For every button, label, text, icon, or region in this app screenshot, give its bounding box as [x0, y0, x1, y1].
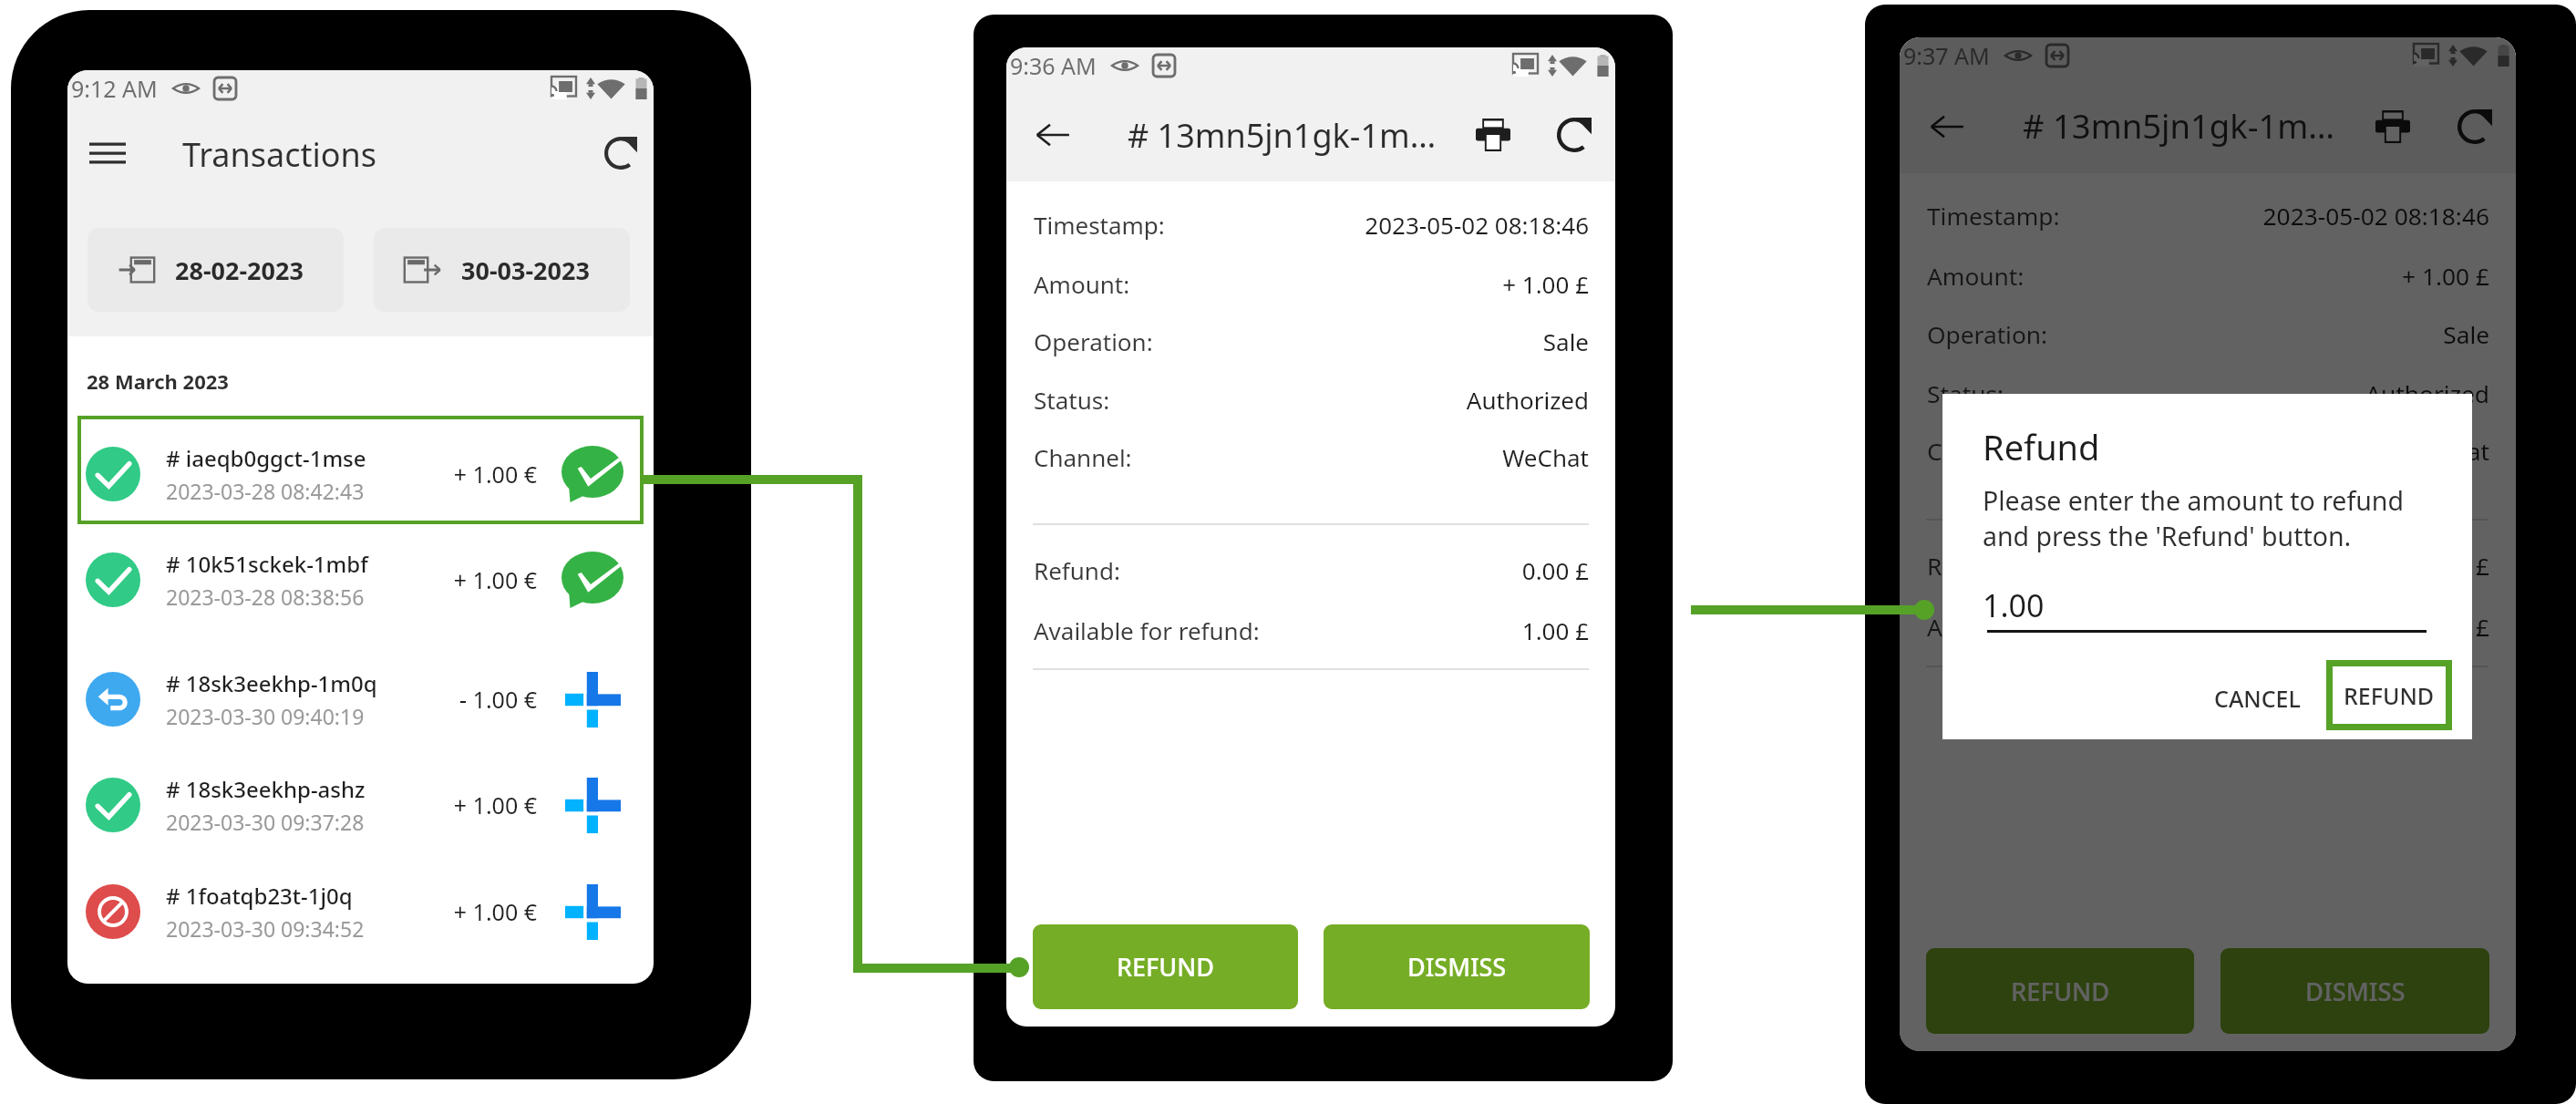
staticText: Operation: [1034, 325, 1153, 357]
staticText: 0.00 £ [2421, 550, 2489, 583]
staticText: 1.00 £ [1521, 614, 1589, 646]
button[interactable]: # 18sk3eekhp-1m0q [67, 652, 654, 747]
staticText: DISMISS [2305, 975, 2406, 1008]
staticText: DISMISS [1407, 950, 1507, 984]
staticText: 9:36 AM [1010, 50, 1097, 81]
staticText: 30-03-2023 [461, 253, 590, 287]
staticText: WeChat [2402, 435, 2489, 468]
staticText: + 1.00 € [453, 896, 537, 927]
staticText: # 18sk3eekhp-ashz [166, 774, 366, 804]
button[interactable]: Print [2372, 106, 2413, 147]
staticText: # 18sk3eekhp-1m0q [166, 668, 377, 698]
staticText: Status: [1927, 377, 2004, 410]
staticText: Refund: [1034, 554, 1120, 586]
button[interactable]: DISMISS [2221, 948, 2489, 1034]
staticText: + 1.00 € [453, 459, 537, 490]
staticText: REFUND [2011, 975, 2110, 1008]
staticText: Please enter the amount to refund and pr… [1983, 483, 2404, 553]
staticText: 2023-03-28 08:38:56 [166, 583, 365, 611]
button[interactable]: REFUND [2326, 660, 2452, 730]
button[interactable]: # iaeqb0ggct-1mse [67, 427, 654, 521]
staticText: Authorized [2365, 377, 2489, 410]
staticText: 28-02-2023 [175, 253, 304, 287]
staticText: 1.00 £ [2421, 611, 2489, 644]
staticText: Amount: [1034, 268, 1130, 300]
button[interactable]: Refresh [603, 135, 639, 171]
button[interactable]: Back [1033, 115, 1073, 155]
button[interactable]: CANCEL [2199, 669, 2316, 727]
staticText: CANCEL [2214, 683, 2301, 714]
staticText: # 13mn5jn1gk-1m… [2023, 103, 2335, 149]
staticText: Amount: [1927, 260, 2025, 293]
staticText: 2023-03-30 09:37:28 [166, 808, 365, 836]
staticText: Sale [2443, 318, 2489, 351]
staticText: 2023-05-02 08:18:46 [1365, 209, 1589, 241]
staticText: Available for refund: [1034, 614, 1260, 646]
button[interactable]: REFUND [1033, 924, 1298, 1009]
staticText: Sale [1542, 325, 1589, 357]
staticText: Status: [1034, 384, 1110, 416]
button[interactable]: REFUND [1926, 948, 2194, 1034]
button[interactable]: 28-02-2023 [88, 228, 344, 312]
staticText: Available for refund: [1927, 611, 2156, 644]
staticText: 9:12 AM [71, 73, 158, 104]
staticText: 2023-03-30 09:34:52 [166, 914, 365, 943]
staticText: + 1.00 £ [2402, 260, 2489, 293]
staticText: Channel: [1927, 435, 2026, 468]
staticText: WeChat [1502, 441, 1589, 473]
staticText: 28 March 2023 [87, 367, 229, 395]
staticText: Transactions [182, 132, 377, 177]
staticText: + 1.00 £ [1502, 268, 1589, 300]
staticText: Authorized [1466, 384, 1589, 416]
button[interactable]: Menu [89, 136, 126, 170]
button[interactable]: # 10k51sckek-1mbf [67, 532, 654, 627]
staticText: 2023-03-30 09:40:19 [166, 702, 365, 730]
staticText: + 1.00 € [453, 564, 537, 595]
staticText: 2023-03-28 08:42:43 [166, 477, 365, 505]
staticText: 1.00 [1983, 584, 2045, 626]
staticText: # 1foatqb23t-1j0q [166, 881, 353, 911]
staticText: # iaeqb0ggct-1mse [166, 443, 366, 473]
staticText: Refund [1983, 423, 2100, 470]
button[interactable]: Refresh [1554, 115, 1594, 155]
button[interactable]: Print [1473, 115, 1513, 155]
staticText: # 13mn5jn1gk-1m… [1128, 113, 1437, 158]
staticText: Timestamp: [1034, 209, 1165, 241]
staticText: - 1.00 € [459, 684, 537, 715]
staticText: 9:37 AM [1903, 40, 1990, 71]
staticText: + 1.00 € [453, 789, 537, 820]
staticText: REFUND [2344, 680, 2435, 711]
staticText: 0.00 £ [1521, 554, 1589, 586]
staticText: Timestamp: [1927, 200, 2060, 232]
staticText: # 10k51sckek-1mbf [166, 549, 368, 579]
staticText: REFUND [1117, 950, 1214, 984]
staticText: Channel: [1034, 441, 1132, 473]
staticText: Refund: [1927, 550, 2014, 583]
button[interactable]: 30-03-2023 [374, 228, 630, 312]
staticText: 2023-05-02 08:18:46 [2262, 200, 2489, 232]
button[interactable]: Refresh [2454, 106, 2495, 147]
button[interactable]: # 1foatqb23t-1j0q [67, 864, 654, 959]
button[interactable]: DISMISS [1324, 924, 1590, 1009]
button[interactable]: Back [1926, 106, 1967, 147]
staticText: Operation: [1927, 318, 2048, 351]
button[interactable]: # 18sk3eekhp-ashz [67, 758, 654, 852]
